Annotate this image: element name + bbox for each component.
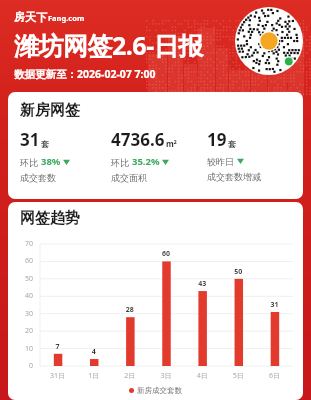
button[interactable]: 扫一扫二维码 (235, 7, 303, 75)
staticText: 成交套数 (20, 172, 56, 183)
staticText: 新房成交套数 (137, 386, 182, 395)
staticText: 套 (41, 139, 49, 149)
staticText: 网签趋势 (20, 209, 80, 228)
staticText: 新房网签 (20, 101, 80, 120)
staticText: 环比 (20, 156, 41, 168)
staticText: 数据更新至：2026-02-07 7:00 (14, 67, 156, 81)
staticText: 19 (207, 128, 227, 151)
staticText: 4736.6 (111, 128, 165, 151)
staticText: 35.2% (132, 155, 160, 168)
staticText: 38% (41, 155, 61, 168)
staticText: 潍坊网签2.6-日报 (14, 28, 203, 62)
staticText: 较昨日 (207, 155, 237, 167)
staticText: 成交套数增减 (207, 171, 261, 182)
staticText: Fang.com (48, 13, 85, 23)
staticText: m² (166, 138, 177, 149)
staticText: 房天下 (14, 10, 47, 24)
staticText: 套 (228, 139, 236, 149)
staticText: 31 (20, 128, 40, 151)
staticText: 环比 (111, 156, 132, 168)
staticText: 成交面积 (111, 172, 147, 183)
